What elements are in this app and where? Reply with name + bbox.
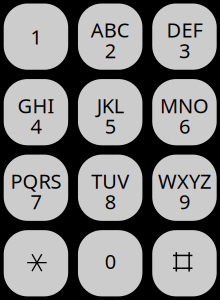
staticText: 0 [105,248,116,275]
button[interactable]: GHI [4,79,68,145]
button[interactable]: ABC [78,3,142,70]
button[interactable]: 1 [4,3,68,70]
staticText: 4 [30,113,41,139]
button[interactable]: MNO [152,79,217,145]
staticText: JKL [97,92,124,119]
staticText: 8 [105,188,116,215]
staticText: 3 [179,37,190,64]
staticText: 7 [30,188,41,215]
staticText: GHI [17,92,54,119]
button[interactable]: TUV [78,155,142,221]
button[interactable]: DEF [152,3,217,70]
button[interactable]: Star [4,230,68,296]
staticText: 6 [179,113,190,139]
staticText: DEF [166,17,202,43]
staticText: 9 [179,188,190,215]
button[interactable]: WXYZ [152,155,217,221]
staticText: MNO [160,92,209,119]
button[interactable]: PQRS [4,155,68,221]
button[interactable]: Pound [152,230,217,296]
staticText: PQRS [10,168,61,194]
staticText: 1 [30,23,41,50]
button[interactable]: 0 [78,230,142,296]
staticText: 5 [105,113,116,139]
staticText: ABC [91,17,130,43]
staticText: WXYZ [158,168,211,194]
staticText: 2 [105,37,116,64]
button[interactable]: JKL [78,79,142,145]
staticText: TUV [91,168,129,194]
